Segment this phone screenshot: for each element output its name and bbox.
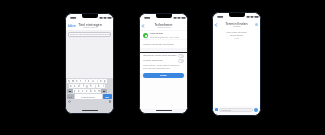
button[interactable]: w: [71, 79, 75, 83]
button[interactable]: u: [91, 79, 95, 83]
button[interactable]: Dictate: [109, 100, 111, 103]
button[interactable]: t: [83, 79, 87, 83]
button[interactable]: o: [99, 79, 103, 83]
button[interactable]: Weitere Teilnehmer hinzufügen: [140, 40, 187, 48]
staticText: o: [100, 79, 102, 83]
staticText: q: [68, 79, 70, 83]
staticText: p: [104, 79, 106, 83]
staticText: Gruppe: [233, 25, 241, 28]
button[interactable]: i: [95, 79, 99, 83]
staticText: z: [88, 79, 90, 83]
button[interactable]: Send: [254, 108, 258, 112]
button[interactable]: x: [77, 89, 81, 93]
button[interactable]: e: [75, 79, 79, 83]
staticText: Los: [105, 95, 110, 98]
staticText: Termin finden: [225, 21, 248, 25]
button[interactable]: z: [87, 79, 91, 83]
staticText: Weitere Teilnehmer hinzufügen: [143, 43, 174, 46]
button[interactable]: Wie soll die Veranstaltung genannt werde…: [68, 32, 111, 37]
staticText: f: [83, 84, 84, 88]
button[interactable]: Back: [215, 23, 217, 27]
button[interactable]: l: [101, 84, 105, 88]
button[interactable]: v: [85, 89, 89, 93]
staticText: a: [70, 84, 72, 88]
staticText: y: [74, 89, 76, 93]
button[interactable]: Nachricht: [219, 108, 253, 112]
button[interactable]: Info: [255, 23, 258, 26]
staticText: g: [86, 84, 88, 88]
staticText: u: [92, 79, 94, 83]
button[interactable]: Numbers: [67, 94, 74, 99]
staticText: Nachricht: [221, 109, 231, 112]
staticText: 14:32: [234, 37, 239, 39]
staticText: Wie soll die Veranstaltung genannt werde…: [70, 33, 111, 36]
staticText: r: [80, 79, 82, 83]
staticText: x: [78, 89, 80, 93]
button[interactable]: Lena Mayer: [140, 31, 187, 39]
button[interactable]: Send: [103, 94, 112, 99]
button[interactable]: h: [89, 84, 93, 88]
staticText: b: [90, 89, 92, 93]
button[interactable]: Space: [75, 94, 102, 99]
staticText: j: [95, 84, 96, 88]
staticText: h: [90, 84, 92, 88]
button[interactable]: Cancel: [68, 24, 76, 28]
staticText: Lena Mayer hat einen Termin geteilt: [224, 31, 249, 36]
staticText: Lena Mayer: [150, 32, 164, 35]
button[interactable]: p: [103, 79, 107, 83]
button[interactable]: m: [97, 89, 101, 93]
button[interactable]: r: [79, 79, 83, 83]
staticText: e: [76, 79, 78, 83]
staticText: w: [72, 79, 75, 83]
button[interactable]: Teilnehmer dürfen Gäste einladen: [140, 53, 187, 58]
button[interactable]: d: [77, 84, 81, 88]
button[interactable]: Shift: [67, 89, 73, 93]
button[interactable]: Backspace: [101, 89, 107, 93]
button[interactable]: Weiter: [143, 73, 184, 78]
staticText: Schritt 2 von 3: [157, 26, 171, 29]
button[interactable]: j: [93, 84, 97, 88]
staticText: Wenn aktiviert, sehen andere Teilnehmer …: [143, 64, 184, 69]
staticText: k: [98, 84, 100, 88]
staticText: Teilnehmer: [154, 22, 173, 26]
button[interactable]: k: [97, 84, 101, 88]
staticText: Leerzeichen: [81, 95, 96, 98]
button[interactable]: Attach: [215, 108, 218, 111]
staticText: 123: [68, 95, 73, 98]
button[interactable]: Back: [142, 24, 144, 28]
button[interactable]: q: [67, 79, 71, 83]
button[interactable]: g: [85, 84, 89, 88]
button[interactable]: Anonym abstimmen: [140, 58, 187, 63]
staticText: d: [78, 84, 80, 88]
button[interactable]: Toggle: [178, 54, 184, 58]
staticText: Weiter: [160, 74, 167, 77]
staticText: Schritt 1 von 3: [83, 26, 97, 29]
button[interactable]: n: [93, 89, 97, 93]
button[interactable]: Toggle: [178, 59, 184, 63]
staticText: Anonym abstimmen: [143, 59, 163, 62]
button[interactable]: b: [89, 89, 93, 93]
staticText: lena.mayer@mail.de · 0176 12345: [150, 36, 180, 39]
staticText: v: [86, 89, 88, 93]
button[interactable]: Emoji: [68, 100, 71, 103]
staticText: t: [85, 79, 86, 83]
staticText: n: [94, 89, 96, 93]
button[interactable]: a: [69, 84, 73, 88]
staticText: i: [97, 79, 98, 83]
button[interactable]: c: [81, 89, 85, 93]
staticText: l: [103, 84, 104, 88]
button[interactable]: s: [73, 84, 77, 88]
button[interactable]: f: [81, 84, 85, 88]
staticText: Titel eintragen: [78, 22, 102, 26]
staticText: s: [74, 84, 76, 88]
button[interactable]: y: [73, 89, 77, 93]
staticText: Teilnehmer dürfen Gäste einladen: [143, 54, 177, 57]
staticText: m: [98, 89, 101, 93]
staticText: Abbrechen: [68, 24, 76, 28]
staticText: c: [82, 89, 84, 93]
